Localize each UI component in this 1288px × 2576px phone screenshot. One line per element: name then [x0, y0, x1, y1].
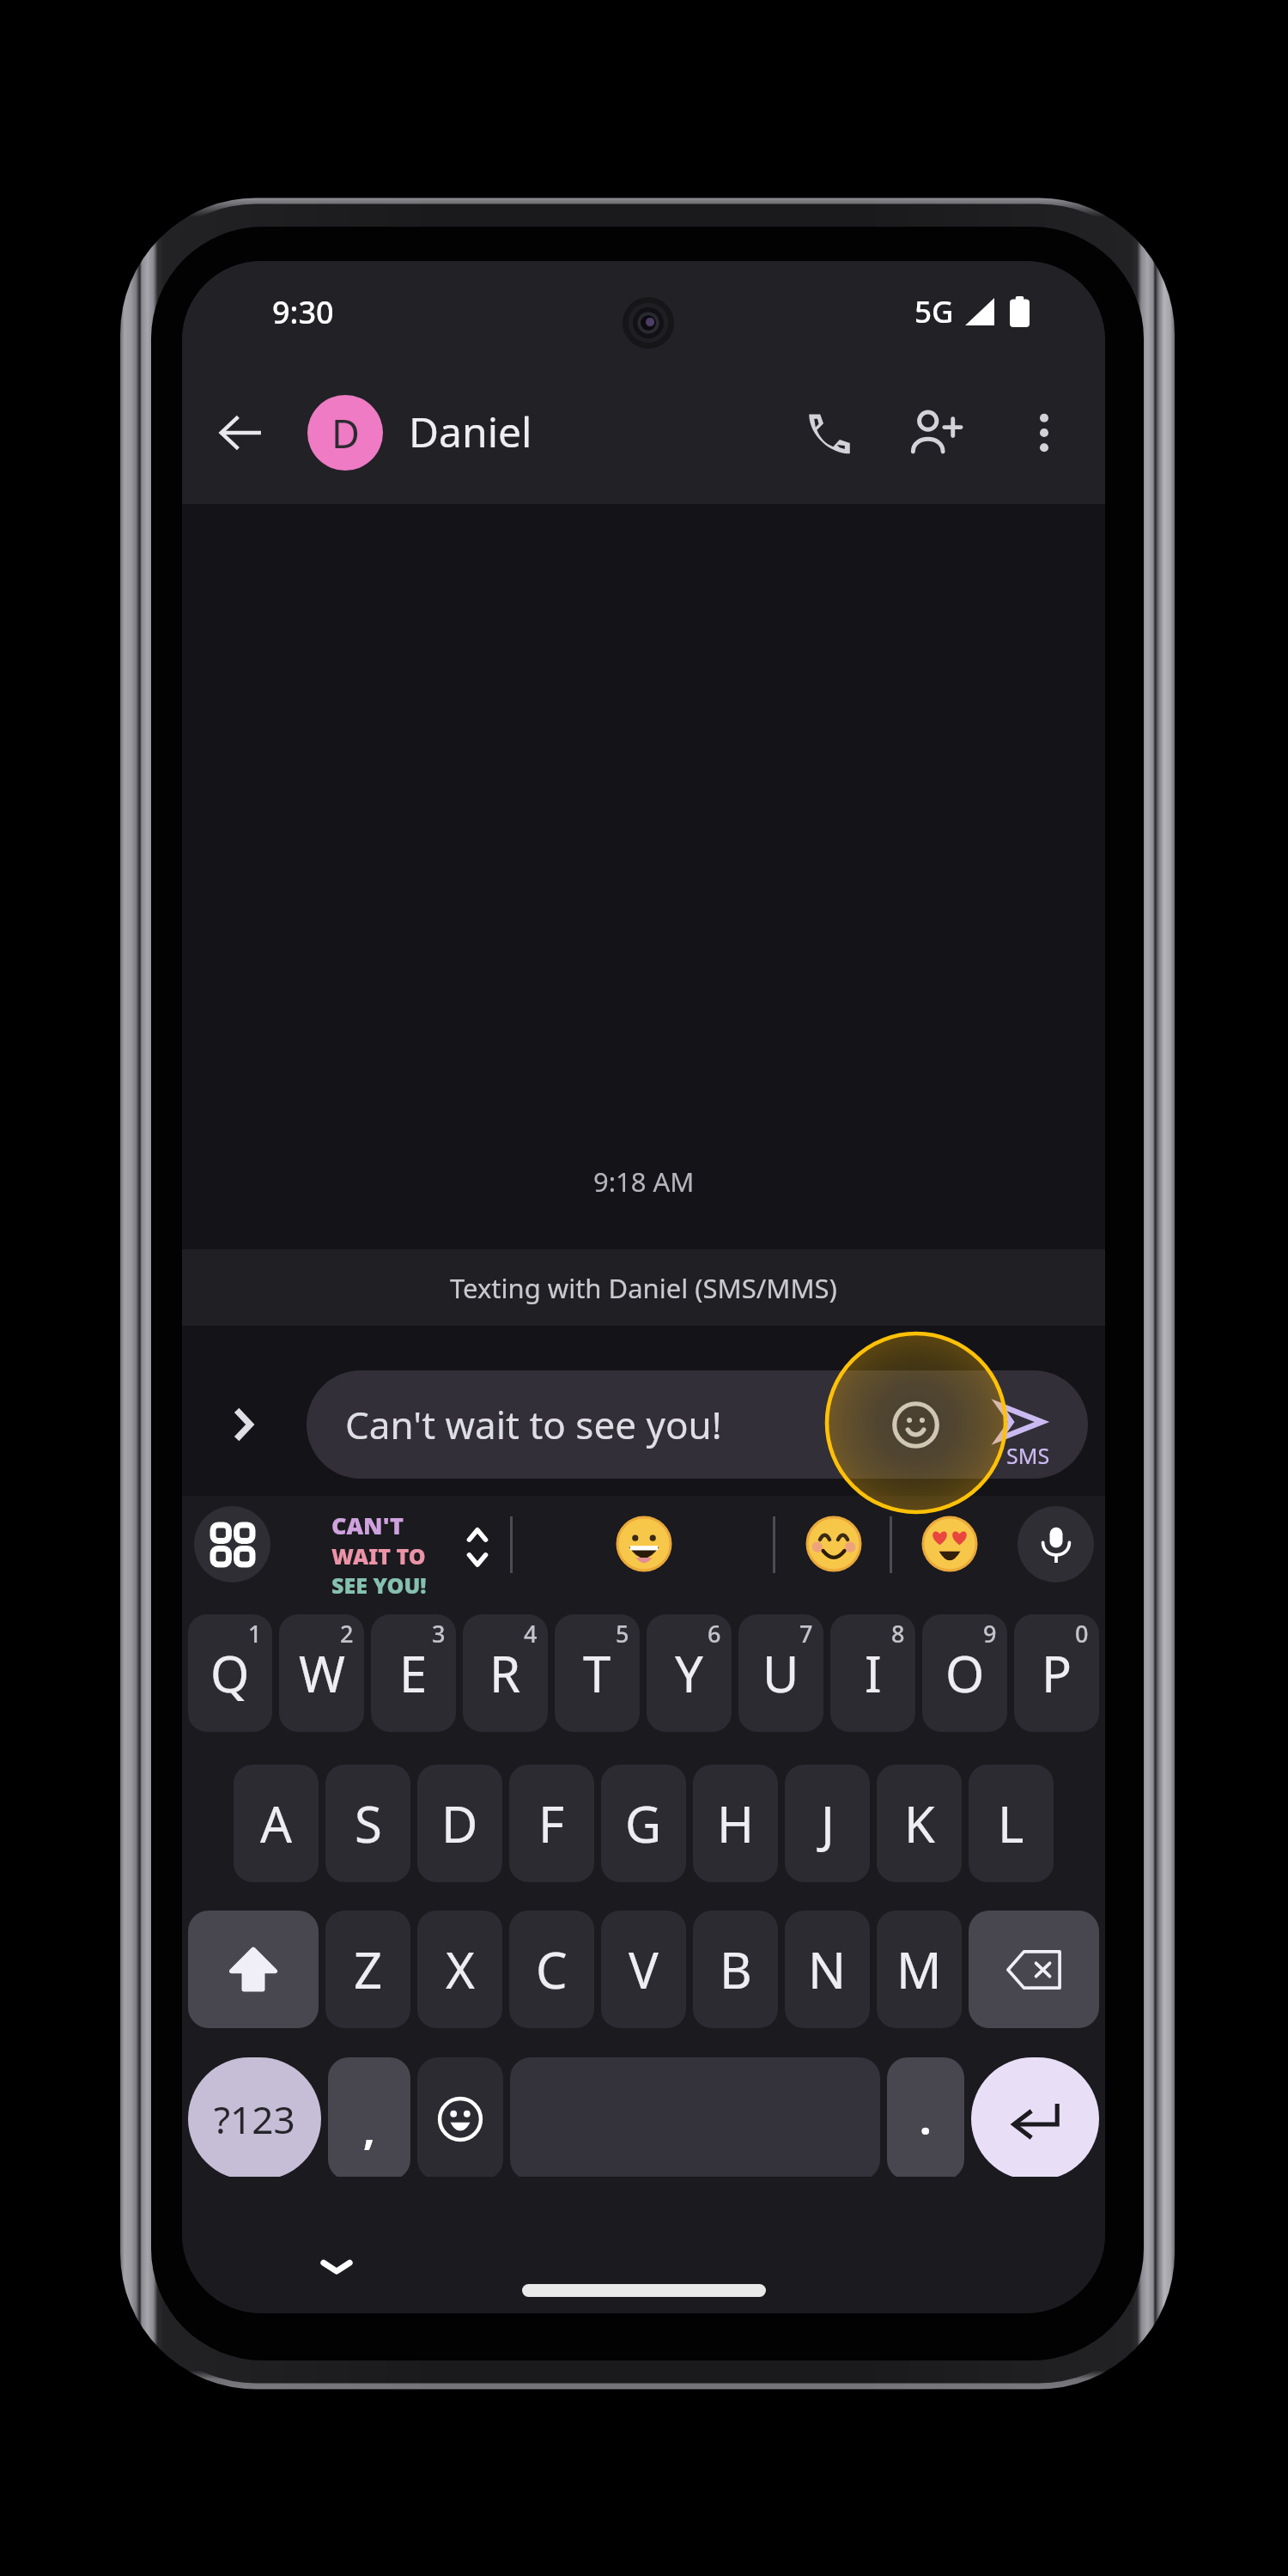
- staticText: 9:30: [272, 291, 334, 333]
- staticText: 1: [248, 1618, 262, 1649]
- staticText: D: [441, 1789, 478, 1857]
- button[interactable]: Expand actions: [200, 1382, 286, 1467]
- button[interactable]: O: [922, 1614, 1007, 1732]
- staticText: 4: [524, 1618, 538, 1649]
- button[interactable]: Shift: [188, 1911, 319, 2028]
- button[interactable]: Emoji: [868, 1377, 963, 1472]
- button[interactable]: E: [371, 1614, 456, 1732]
- staticText: CAN'T: [331, 1510, 404, 1541]
- staticText: 9: [983, 1618, 997, 1649]
- button[interactable]: B: [693, 1911, 778, 2028]
- staticText: 7: [799, 1618, 813, 1649]
- button[interactable]: Enter: [971, 2057, 1099, 2180]
- button[interactable]: M: [877, 1911, 962, 2028]
- button[interactable]: Call: [785, 388, 874, 477]
- button[interactable]: J: [785, 1765, 870, 1882]
- staticText: Q: [210, 1639, 250, 1707]
- button[interactable]: Grinning emoji: [611, 1511, 677, 1577]
- staticText: W: [299, 1639, 345, 1707]
- staticText: S: [355, 1789, 382, 1857]
- staticText: N: [808, 1935, 847, 2003]
- button[interactable]: Space: [510, 2057, 880, 2180]
- button[interactable]: C: [509, 1911, 594, 2028]
- button[interactable]: F: [509, 1765, 594, 1882]
- staticText: G: [625, 1789, 662, 1857]
- button[interactable]: X: [417, 1911, 502, 2028]
- staticText: Y: [675, 1639, 703, 1707]
- button[interactable]: V: [601, 1911, 686, 2028]
- staticText: SMS: [1006, 1441, 1050, 1470]
- button[interactable]: H: [693, 1765, 778, 1882]
- button[interactable]: Send SMS: [970, 1370, 1082, 1479]
- button[interactable]: Sticker suggestion: Can't wait to see yo…: [331, 1510, 427, 1600]
- staticText: U: [762, 1639, 799, 1707]
- button[interactable]: K: [877, 1765, 962, 1882]
- staticText: O: [945, 1639, 985, 1707]
- button[interactable]: Backspace: [969, 1911, 1099, 2028]
- button[interactable]: U: [738, 1614, 823, 1732]
- staticText: M: [896, 1935, 942, 2003]
- staticText: 9:18 AM: [593, 1163, 695, 1200]
- button[interactable]: Back: [199, 392, 282, 474]
- button[interactable]: Hide keyboard: [306, 2235, 368, 2297]
- button[interactable]: I: [830, 1614, 915, 1732]
- staticText: T: [583, 1639, 611, 1707]
- button[interactable]: W: [279, 1614, 364, 1732]
- staticText: .: [920, 2091, 932, 2147]
- staticText: ,: [363, 2101, 375, 2157]
- staticText: Daniel: [409, 404, 532, 459]
- button[interactable]: S: [325, 1765, 410, 1882]
- staticText: D: [331, 407, 360, 459]
- staticText: A: [260, 1789, 293, 1857]
- staticText: WAIT TO: [331, 1541, 426, 1571]
- button[interactable]: G: [601, 1765, 686, 1882]
- staticText: 0: [1075, 1618, 1089, 1649]
- staticText: V: [629, 1935, 659, 2003]
- staticText: R: [489, 1639, 521, 1707]
- staticText: F: [538, 1789, 565, 1857]
- staticText: 5G: [914, 291, 954, 332]
- button[interactable]: Toolbar: [194, 1506, 270, 1583]
- staticText: 3: [432, 1618, 446, 1649]
- button[interactable]: T: [555, 1614, 640, 1732]
- staticText: I: [865, 1639, 882, 1707]
- staticText: J: [821, 1789, 835, 1857]
- staticText: Can't wait to see you!: [345, 1399, 722, 1450]
- staticText: X: [446, 1935, 475, 2003]
- button[interactable]: Voice input: [1018, 1506, 1094, 1583]
- staticText: ?123: [214, 2093, 295, 2145]
- button[interactable]: A: [234, 1765, 319, 1882]
- button[interactable]: More options: [1003, 392, 1085, 474]
- button[interactable]: R: [463, 1614, 548, 1732]
- staticText: K: [904, 1789, 935, 1857]
- button[interactable]: D: [307, 395, 532, 471]
- staticText: 5: [616, 1618, 629, 1649]
- staticText: E: [399, 1639, 428, 1707]
- staticText: 2: [340, 1618, 354, 1649]
- button[interactable]: .: [887, 2057, 964, 2180]
- staticText: C: [536, 1935, 568, 2003]
- staticText: H: [717, 1789, 754, 1857]
- staticText: Z: [354, 1935, 383, 2003]
- button[interactable]: L: [969, 1765, 1054, 1882]
- staticText: Texting with Daniel (SMS/MMS): [450, 1270, 837, 1306]
- staticText: 6: [708, 1618, 721, 1649]
- button[interactable]: N: [785, 1911, 870, 2028]
- staticText: 8: [891, 1618, 905, 1649]
- button[interactable]: Add person: [891, 388, 981, 477]
- staticText: B: [720, 1935, 752, 2003]
- button[interactable]: More suggestions: [452, 1522, 503, 1573]
- button[interactable]: P: [1014, 1614, 1099, 1732]
- button[interactable]: Q: [188, 1614, 272, 1732]
- button[interactable]: ?123: [188, 2057, 321, 2180]
- staticText: SEE YOU!: [331, 1571, 427, 1600]
- button[interactable]: Heart eyes emoji: [917, 1511, 982, 1577]
- button[interactable]: Z: [325, 1911, 410, 2028]
- button[interactable]: Y: [647, 1614, 732, 1732]
- staticText: P: [1042, 1639, 1072, 1707]
- button[interactable]: ,: [328, 2057, 410, 2180]
- button[interactable]: D: [417, 1765, 502, 1882]
- button[interactable]: Smiling emoji: [801, 1511, 866, 1577]
- button[interactable]: Can't wait to see you!: [307, 1370, 1088, 1479]
- button[interactable]: Emoji keyboard: [417, 2057, 503, 2180]
